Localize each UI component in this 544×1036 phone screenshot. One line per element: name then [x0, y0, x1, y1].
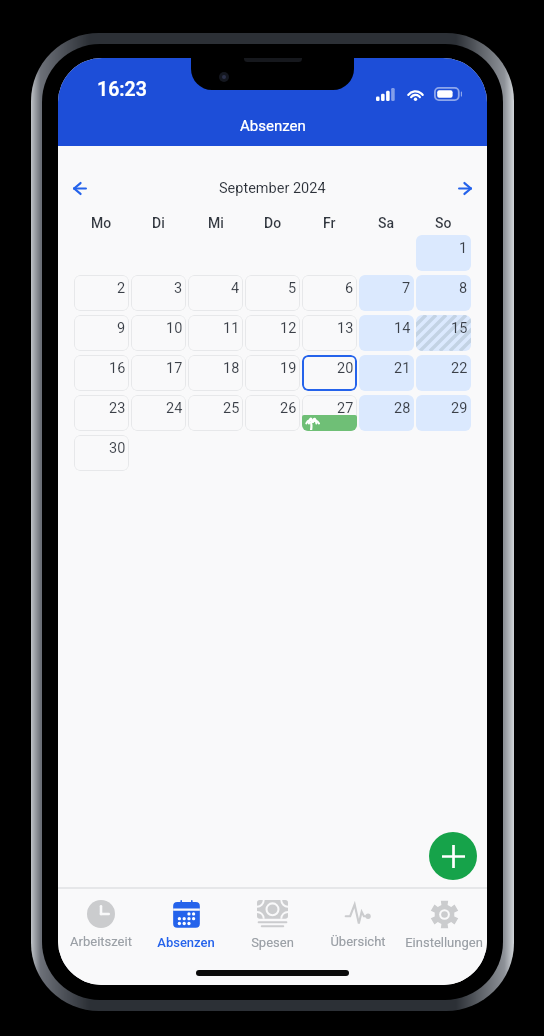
button[interactable]: 13: [302, 315, 357, 351]
button[interactable]: 22: [416, 355, 471, 391]
staticText: Einstellungen: [405, 935, 483, 950]
staticText: 11: [223, 320, 240, 337]
button[interactable]: 27: [302, 395, 357, 431]
button[interactable]: 14: [359, 315, 414, 351]
staticText: Absenzen: [157, 935, 215, 950]
button[interactable]: 26: [245, 395, 300, 431]
staticText: So: [435, 215, 452, 231]
staticText: Absenzen: [240, 117, 306, 135]
staticText: 28: [394, 400, 411, 417]
staticText: Di: [152, 215, 165, 231]
staticText: 8: [459, 280, 468, 297]
button[interactable]: 24: [131, 395, 186, 431]
staticText: 4: [231, 280, 240, 297]
staticText: 19: [280, 360, 297, 377]
button[interactable]: 28: [359, 395, 414, 431]
staticText: Fr: [323, 215, 336, 231]
staticText: 24: [166, 400, 183, 417]
staticText: 23: [109, 400, 126, 417]
staticText: Arbeitszeit: [70, 934, 132, 949]
button[interactable]: 15: [416, 315, 471, 351]
staticText: 16:23: [97, 78, 147, 101]
button[interactable]: 12: [245, 315, 300, 351]
button[interactable]: 7: [359, 275, 414, 311]
staticText: 22: [451, 360, 468, 377]
button[interactable]: 23: [74, 395, 129, 431]
button[interactable]: Absenz hinzufügen: [429, 832, 477, 880]
staticText: 9: [117, 320, 126, 337]
button[interactable]: 4: [188, 275, 243, 311]
button[interactable]: 16: [74, 355, 129, 391]
button[interactable]: Nächster Monat: [452, 174, 472, 202]
staticText: 15: [451, 320, 468, 337]
staticText: 25: [223, 400, 240, 417]
button[interactable]: 20: [302, 355, 357, 391]
button[interactable]: 21: [359, 355, 414, 391]
button[interactable]: 18: [188, 355, 243, 391]
staticText: Spesen: [251, 935, 294, 950]
staticText: 29: [451, 400, 468, 417]
staticText: 16: [109, 360, 126, 377]
button[interactable]: 8: [416, 275, 471, 311]
staticText: Do: [264, 215, 282, 231]
button[interactable]: 9: [74, 315, 129, 351]
button[interactable]: Übersicht: [315, 889, 401, 952]
staticText: Sa: [378, 215, 395, 231]
button[interactable]: 2: [74, 275, 129, 311]
staticText: 17: [166, 360, 183, 377]
staticText: 21: [394, 360, 411, 377]
staticText: Mi: [208, 215, 224, 231]
button[interactable]: Arbeitszeit: [58, 889, 143, 952]
staticText: 18: [223, 360, 240, 377]
staticText: 7: [402, 280, 411, 297]
staticText: 14: [394, 320, 411, 337]
staticText: 13: [337, 320, 354, 337]
button[interactable]: 11: [188, 315, 243, 351]
button[interactable]: 1: [416, 235, 471, 271]
staticText: 10: [166, 320, 183, 337]
button[interactable]: 3: [131, 275, 186, 311]
staticText: Mo: [91, 215, 112, 231]
button[interactable]: 17: [131, 355, 186, 391]
staticText: 6: [345, 280, 354, 297]
button[interactable]: 5: [245, 275, 300, 311]
staticText: 30: [109, 440, 126, 457]
button[interactable]: 29: [416, 395, 471, 431]
staticText: 1: [459, 240, 468, 257]
staticText: 12: [280, 320, 297, 337]
button[interactable]: 10: [131, 315, 186, 351]
staticText: Übersicht: [330, 934, 386, 949]
button[interactable]: 25: [188, 395, 243, 431]
staticText: 27: [337, 400, 354, 417]
button[interactable]: 30: [74, 435, 129, 471]
staticText: 20: [337, 360, 354, 377]
staticText: 5: [288, 280, 297, 297]
staticText: 2: [117, 280, 126, 297]
staticText: 26: [280, 400, 297, 417]
staticText: September 2024: [219, 180, 326, 197]
button[interactable]: Absenzen: [143, 889, 229, 952]
button[interactable]: Einstellungen: [401, 889, 487, 952]
button[interactable]: 19: [245, 355, 300, 391]
button[interactable]: Vorheriger Monat: [73, 174, 93, 202]
button[interactable]: 6: [302, 275, 357, 311]
staticText: 3: [174, 280, 183, 297]
button[interactable]: Spesen: [229, 889, 315, 952]
